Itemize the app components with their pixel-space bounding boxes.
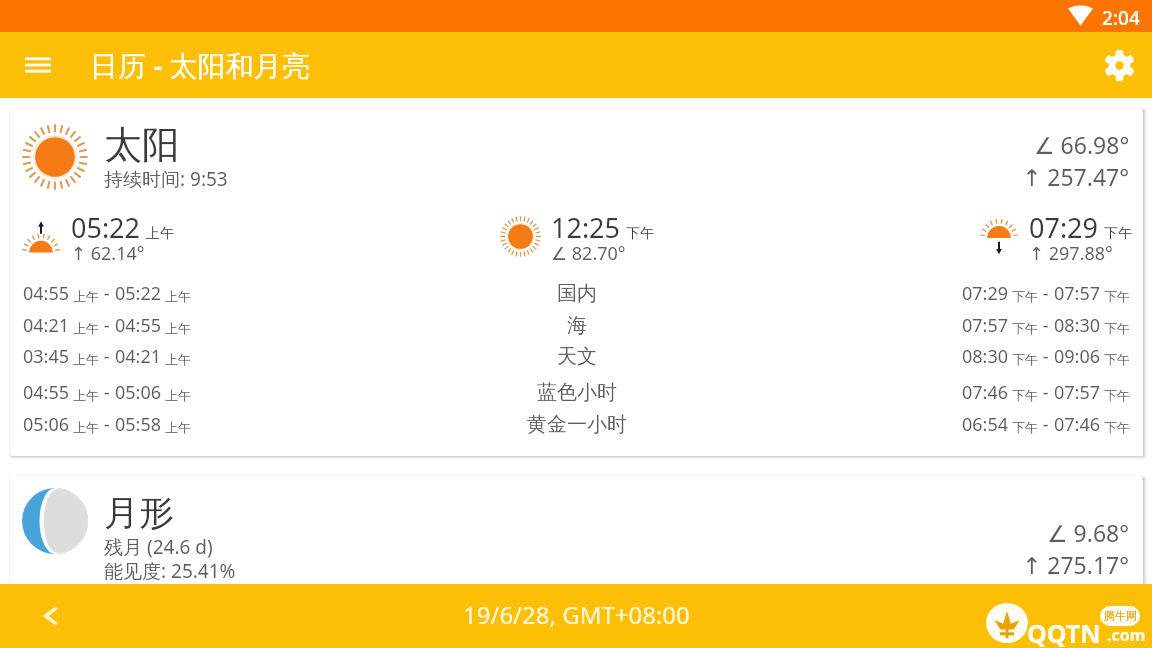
staticText: -	[99, 412, 115, 437]
button[interactable]: 04:21	[10, 313, 1142, 339]
staticText: ↑ 257.47°	[1022, 161, 1130, 192]
staticText: 下午	[1104, 387, 1130, 403]
button[interactable]: 12:25	[495, 206, 675, 268]
staticText: 太阳	[104, 121, 180, 169]
button[interactable]: Menu	[14, 41, 62, 89]
staticText: ∠ 66.98°	[1034, 129, 1130, 160]
staticText: -	[1038, 344, 1054, 369]
staticText: 上午	[73, 387, 99, 403]
staticText: 03:45	[23, 344, 70, 369]
staticText: 07:46	[962, 380, 1009, 405]
staticText: -	[99, 380, 115, 405]
staticText: 下午	[1104, 320, 1130, 336]
staticText: 蓝色小时	[537, 380, 617, 405]
staticText: 04:21	[115, 344, 162, 369]
staticText: 2:04	[1102, 5, 1140, 31]
staticText: 07:29	[962, 281, 1009, 306]
staticText: 下午	[1104, 419, 1130, 435]
staticText: 07:29	[1029, 209, 1099, 246]
staticText: 黄金一小时	[527, 412, 627, 437]
button[interactable]: 月形	[10, 476, 1142, 616]
staticText: QQTN	[1027, 616, 1101, 648]
staticText: 天文	[557, 344, 597, 369]
staticText: -	[1038, 281, 1054, 306]
staticText: 05:06	[23, 412, 70, 437]
staticText: 05:22	[71, 209, 141, 246]
staticText: 07:57	[1054, 380, 1101, 405]
staticText: 上午	[73, 288, 99, 304]
staticText: 05:06	[115, 380, 162, 405]
button[interactable]: 04:55	[10, 281, 1142, 307]
staticText: .com	[1107, 624, 1146, 646]
staticText: ↑ 62.14°	[71, 241, 145, 266]
staticText: 下午	[1104, 351, 1130, 367]
button[interactable]: 太阳	[10, 108, 1142, 456]
staticText: -	[99, 344, 115, 369]
staticText: 07:57	[1054, 281, 1101, 306]
button[interactable]: 05:22	[15, 206, 195, 268]
staticText: -	[99, 313, 115, 338]
staticText: 上午	[73, 351, 99, 367]
staticText: 上午	[165, 419, 191, 435]
staticText: 19/6/28, GMT+08:00	[463, 598, 690, 631]
staticText: 上午	[146, 225, 174, 243]
staticText: 07:57	[962, 313, 1009, 338]
staticText: 09:06	[1054, 344, 1101, 369]
staticText: 04:55	[23, 281, 70, 306]
staticText: 能见度: 25.41%	[104, 558, 236, 584]
staticText: 08:30	[1054, 313, 1101, 338]
button[interactable]: 03:45	[10, 344, 1142, 370]
staticText: 上午	[165, 387, 191, 403]
staticText: -	[99, 281, 115, 306]
button[interactable]: Settings	[1095, 41, 1143, 89]
staticText: 04:55	[115, 313, 162, 338]
staticText: 上午	[73, 320, 99, 336]
staticText: 日历 - 太阳和月亮	[90, 46, 310, 84]
staticText: 04:21	[23, 313, 70, 338]
staticText: 残月 (24.6 d)	[104, 534, 213, 560]
button[interactable]: 05:06	[10, 412, 1142, 438]
staticText: 下午	[1012, 320, 1038, 336]
staticText: ↑ 275.17°	[1022, 549, 1130, 580]
staticText: 腾牛网	[1104, 609, 1137, 623]
staticText: 下午	[1012, 288, 1038, 304]
staticText: 06:54	[962, 412, 1009, 437]
staticText: -	[1038, 313, 1054, 338]
staticText: 05:22	[115, 281, 162, 306]
staticText: ↑ 297.88°	[1029, 241, 1113, 266]
staticText: 下午	[1104, 288, 1130, 304]
button[interactable]: 07:29	[973, 206, 1142, 268]
staticText: 07:46	[1054, 412, 1101, 437]
staticText: 下午	[626, 225, 654, 243]
staticText: 上午	[165, 351, 191, 367]
staticText: 上午	[73, 419, 99, 435]
staticText: 下午	[1012, 351, 1038, 367]
staticText: 下午	[1012, 387, 1038, 403]
staticText: 月形	[104, 491, 174, 535]
staticText: -	[1038, 412, 1054, 437]
staticText: 05:58	[115, 412, 162, 437]
staticText: 12:25	[551, 209, 621, 246]
button[interactable]: 04:55	[10, 380, 1142, 406]
staticText: 04:55	[23, 380, 70, 405]
staticText: 上午	[165, 320, 191, 336]
staticText: ∠ 9.68°	[1047, 517, 1130, 548]
button[interactable]: Back	[26, 592, 74, 640]
staticText: 国内	[557, 281, 597, 306]
staticText: 下午	[1104, 225, 1132, 243]
staticText: 下午	[1012, 419, 1038, 435]
staticText: 持续时间: 9:53	[104, 166, 228, 192]
staticText: 海	[567, 313, 587, 338]
staticText: -	[1038, 380, 1054, 405]
staticText: 08:30	[962, 344, 1009, 369]
staticText: ∠ 82.70°	[551, 241, 626, 266]
staticText: 上午	[165, 288, 191, 304]
